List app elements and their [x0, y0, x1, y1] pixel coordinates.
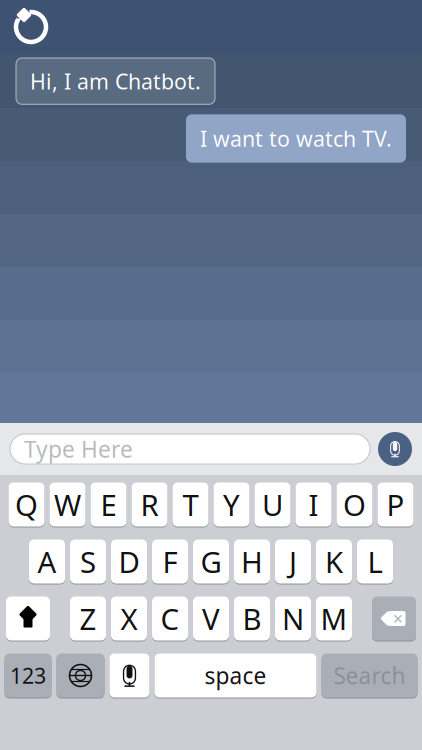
staticText: Q [15, 485, 38, 524]
staticText: Type Here [24, 434, 133, 464]
button[interactable]: N [275, 596, 311, 641]
staticText: U [262, 485, 283, 524]
staticText: V [202, 599, 220, 638]
button[interactable]: Z [70, 596, 106, 641]
staticText: 123 [10, 661, 46, 690]
button[interactable]: A [29, 539, 65, 584]
staticText: Search [333, 660, 405, 690]
button[interactable]: M [316, 596, 352, 641]
staticText: Hi, I am Chatbot. [30, 67, 201, 95]
button[interactable]: F [152, 539, 188, 584]
staticText: J [289, 542, 297, 581]
staticText: B [242, 599, 261, 638]
staticText: W [54, 485, 81, 524]
button[interactable]: Shift [6, 596, 50, 641]
button[interactable]: Delete [372, 596, 416, 641]
button[interactable]: C [152, 596, 188, 641]
button[interactable]: Voice input [378, 432, 412, 466]
staticText: R [140, 485, 158, 524]
button[interactable]: Q [8, 482, 44, 527]
staticText: Y [223, 485, 240, 524]
button[interactable]: space [154, 653, 316, 698]
button[interactable]: K [316, 539, 352, 584]
button[interactable]: Dictate [109, 653, 149, 698]
staticText: A [37, 542, 56, 581]
staticText: K [325, 542, 343, 581]
button[interactable]: Reset conversation [0, 0, 50, 46]
staticText: X [120, 599, 137, 638]
staticText: I [308, 485, 318, 524]
button[interactable]: Search [321, 653, 417, 698]
button[interactable]: S [70, 539, 106, 584]
button[interactable]: I [295, 482, 331, 527]
staticText: × [393, 607, 403, 630]
button[interactable]: J [275, 539, 311, 584]
staticText: S [80, 542, 96, 581]
button[interactable]: D [111, 539, 147, 584]
staticText: O [343, 485, 366, 524]
staticText: space [204, 660, 266, 690]
button[interactable]: U [254, 482, 290, 527]
staticText: F [162, 542, 177, 581]
button[interactable]: G [193, 539, 229, 584]
button[interactable]: H [234, 539, 270, 584]
button[interactable]: R [131, 482, 167, 527]
button[interactable]: Next keyboard [56, 653, 104, 698]
staticText: H [241, 542, 263, 581]
staticText: N [282, 599, 304, 638]
button[interactable]: W [49, 482, 85, 527]
button[interactable]: P [377, 482, 413, 527]
staticText: M [320, 599, 347, 638]
button[interactable]: X [111, 596, 147, 641]
staticText: C [160, 599, 179, 638]
button[interactable]: Type Here [10, 434, 370, 464]
button[interactable]: V [193, 596, 229, 641]
button[interactable]: L [357, 539, 393, 584]
button[interactable]: O [336, 482, 372, 527]
button[interactable]: Y [213, 482, 249, 527]
staticText: D [118, 542, 139, 581]
staticText: G [200, 542, 221, 581]
button[interactable]: T [172, 482, 208, 527]
staticText: L [367, 542, 382, 581]
staticText: I want to watch TV. [200, 124, 392, 153]
button[interactable]: E [90, 482, 126, 527]
staticText: T [182, 485, 198, 524]
button[interactable]: 123 [4, 653, 51, 698]
staticText: E [100, 485, 116, 524]
staticText: Z [79, 599, 96, 638]
button[interactable]: B [234, 596, 270, 641]
staticText: P [386, 485, 404, 524]
